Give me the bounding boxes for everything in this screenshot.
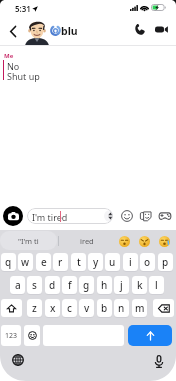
button[interactable]: Camera [3, 206, 23, 226]
staticText: I'm tired [32, 211, 68, 223]
staticText: blu [61, 24, 78, 38]
button[interactable]: Emoji suggestion [139, 236, 150, 247]
button[interactable]: l [149, 276, 164, 294]
staticText: f [68, 278, 72, 292]
staticText: v [84, 301, 90, 315]
button[interactable]: Emoji suggestion [119, 236, 130, 247]
staticText: Shut up [7, 70, 40, 82]
staticText: x [50, 301, 56, 315]
button[interactable]: j [114, 276, 129, 294]
button[interactable]: f [62, 276, 77, 294]
button[interactable]: Expand [104, 210, 113, 222]
button[interactable]: h [97, 276, 112, 294]
button[interactable]: m [132, 299, 147, 317]
staticText: j [120, 278, 123, 292]
button[interactable]: Back [3, 21, 23, 41]
button[interactable]: Emoji suggestion [159, 236, 170, 247]
button[interactable]: Video call [152, 20, 170, 38]
staticText: No [7, 60, 20, 72]
button[interactable]: Shift [1, 299, 22, 317]
staticText: "I'm ti [18, 236, 39, 246]
button[interactable]: ired [59, 230, 114, 252]
staticText: s [32, 278, 37, 292]
staticText: u [109, 255, 116, 269]
button[interactable]: 123 [1, 325, 21, 346]
button[interactable]: t [71, 253, 86, 271]
staticText: k [137, 278, 143, 292]
staticText: i [129, 255, 132, 269]
button[interactable]: a [10, 276, 25, 294]
button[interactable]: d [45, 276, 60, 294]
button[interactable]: o [140, 253, 155, 271]
button[interactable]: g [79, 276, 94, 294]
button[interactable]: b [97, 299, 112, 317]
button[interactable]: Backspace [153, 299, 174, 317]
button[interactable]: Emoji keyboard [24, 325, 40, 346]
button[interactable]: Call [130, 20, 148, 38]
button[interactable]: q [1, 253, 16, 271]
button[interactable]: I'm tired [27, 208, 113, 224]
button[interactable]: Switch language [10, 352, 26, 368]
staticText: a [15, 278, 21, 292]
button[interactable]: z [27, 299, 42, 317]
button[interactable]: Send [128, 325, 172, 346]
staticText: b [101, 301, 108, 315]
staticText: e [41, 255, 47, 269]
button[interactable]: Contact photo [27, 19, 47, 45]
staticText: n [118, 301, 125, 315]
staticText: y [93, 255, 99, 269]
staticText: z [32, 301, 37, 315]
staticText: ired [80, 236, 94, 246]
staticText: o [144, 255, 151, 269]
button[interactable]: Emoji [121, 210, 133, 222]
button[interactable]: p [158, 253, 173, 271]
button[interactable]: e [36, 253, 51, 271]
button[interactable]: r [53, 253, 68, 271]
staticText: 5:31 [15, 3, 31, 14]
staticText: c [67, 301, 72, 315]
staticText: h [101, 278, 108, 292]
button[interactable]: Voice input [151, 353, 167, 369]
button[interactable]: i [123, 253, 138, 271]
button[interactable]: Stickers [140, 210, 152, 222]
button[interactable]: s [27, 276, 42, 294]
button[interactable]: u [105, 253, 120, 271]
staticText: 123 [5, 331, 18, 341]
staticText: p [162, 255, 169, 269]
button[interactable]: c [62, 299, 77, 317]
button[interactable]: n [114, 299, 129, 317]
staticText: l [155, 278, 158, 292]
button[interactable]: y [88, 253, 103, 271]
staticText: g [83, 278, 90, 292]
button[interactable]: Games [159, 210, 171, 222]
staticText: w [21, 255, 30, 269]
button[interactable]: "I'm ti [0, 231, 57, 250]
staticText: r [58, 255, 63, 269]
staticText: q [5, 255, 12, 269]
button[interactable]: v [79, 299, 94, 317]
staticText: m [135, 301, 145, 315]
staticText: t [77, 255, 81, 269]
button[interactable]: x [45, 299, 60, 317]
button[interactable]: w [18, 253, 33, 271]
staticText: d [49, 278, 56, 292]
staticText: Me [4, 52, 14, 60]
button[interactable]: k [132, 276, 147, 294]
